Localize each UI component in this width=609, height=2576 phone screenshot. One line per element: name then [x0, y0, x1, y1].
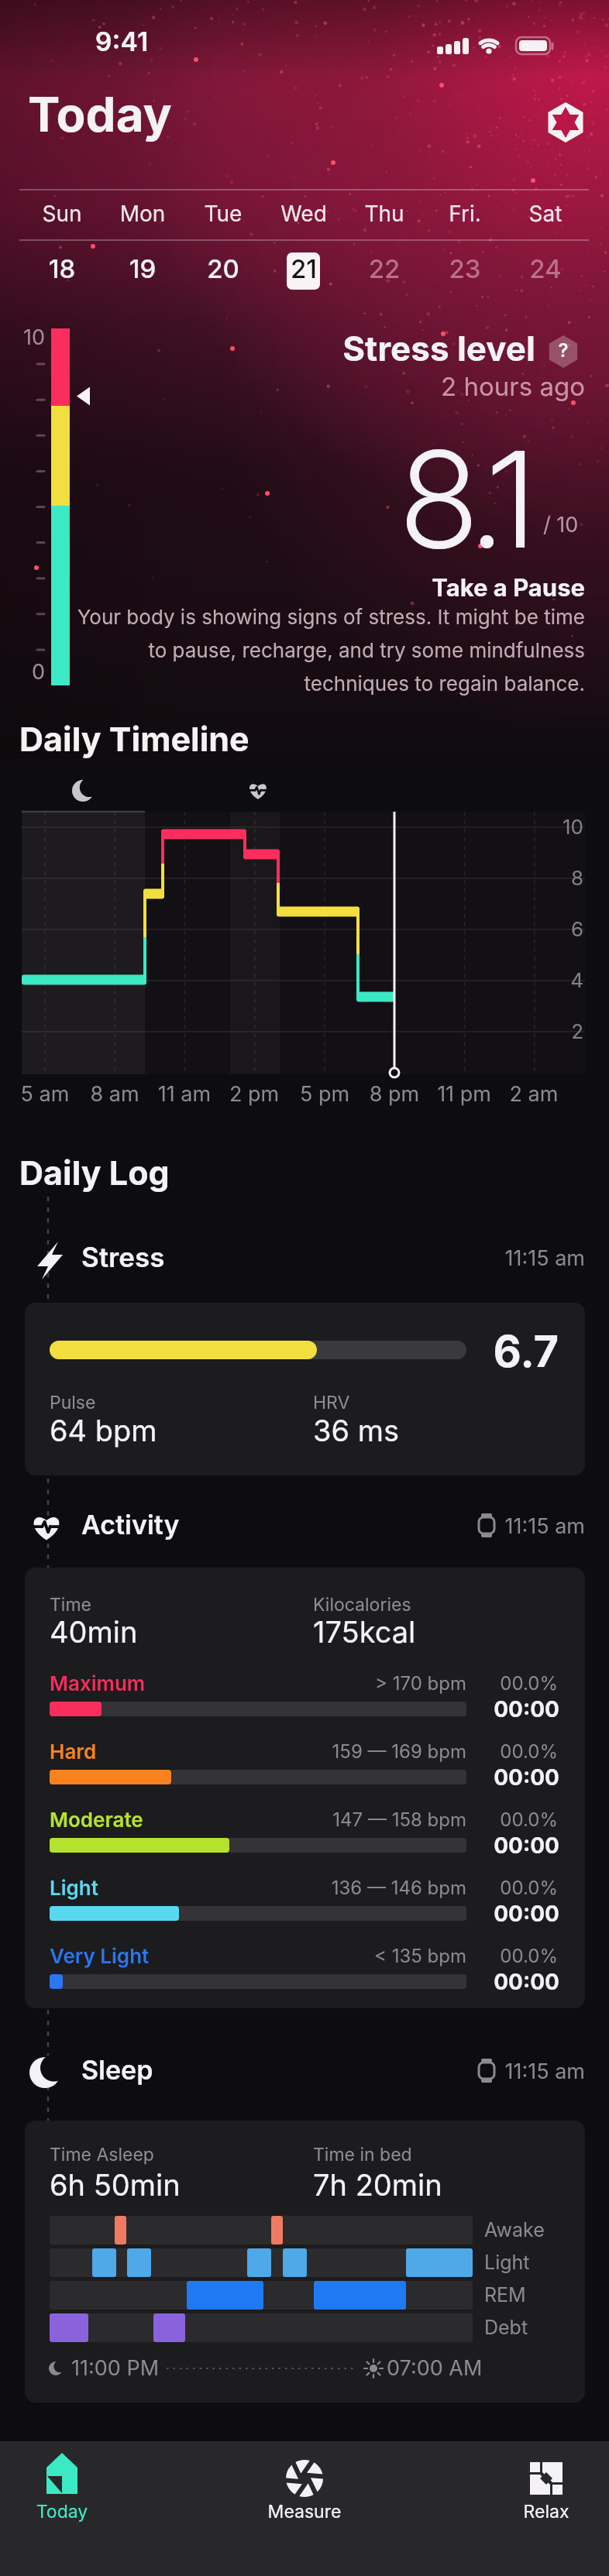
staticText: 11:15 am — [469, 2059, 585, 2084]
staticText: Take a Pause — [353, 573, 585, 603]
staticText: 00:00 — [443, 1764, 559, 1791]
staticText: 147 — 158 bpm — [249, 1808, 466, 1831]
staticText: Awake — [484, 2218, 545, 2241]
staticText: Light — [484, 2251, 530, 2274]
staticText: 11:15 am — [469, 1245, 585, 1271]
staticText: 00.0% — [442, 1808, 558, 1831]
staticText: Thu — [344, 201, 425, 227]
staticText: 07:00 AM — [387, 2355, 483, 2381]
staticText: 5 am — [10, 1081, 80, 1107]
staticText: 0 — [15, 659, 45, 685]
staticText: 23 — [425, 253, 505, 284]
staticText: 6 — [545, 917, 583, 941]
staticText: / 10 — [543, 512, 579, 538]
staticText: 00:00 — [443, 1969, 559, 1995]
button[interactable] — [25, 1568, 585, 2008]
staticText: 2 — [545, 1019, 583, 1043]
staticText: 8 pm — [360, 1081, 429, 1107]
staticText: 22 — [344, 253, 425, 284]
button[interactable] — [505, 197, 586, 294]
staticText: 21 — [263, 253, 344, 284]
staticText: 19 — [102, 253, 183, 284]
button[interactable] — [263, 197, 344, 294]
staticText: Hard — [50, 1740, 97, 1764]
staticText: 18 — [22, 253, 102, 284]
staticText: Today — [15, 2501, 108, 2523]
staticText: 20 — [183, 253, 263, 284]
staticText: 24 — [505, 253, 586, 284]
staticText: 00.0% — [442, 1740, 558, 1763]
staticText: 175kcal — [313, 1614, 416, 1650]
staticText: Relax — [500, 2501, 593, 2523]
staticText: Stress — [81, 1241, 165, 1273]
staticText: Mon — [102, 201, 183, 227]
staticText: 6h 50min — [50, 2167, 181, 2203]
button[interactable] — [183, 197, 263, 294]
button[interactable] — [22, 197, 102, 294]
staticText: 2 am — [499, 1081, 569, 1107]
button[interactable] — [25, 2121, 585, 2403]
staticText: 40min — [50, 1614, 138, 1650]
staticText: 11 am — [150, 1081, 219, 1107]
staticText: Sleep — [81, 2054, 153, 2086]
staticText: 159 — 169 bpm — [249, 1740, 466, 1763]
staticText: Measure — [258, 2501, 351, 2523]
staticText: REM — [484, 2283, 526, 2306]
button[interactable] — [258, 2447, 351, 2525]
staticText: 11:00 PM — [71, 2355, 160, 2381]
staticText: > 170 bpm — [249, 1672, 466, 1695]
staticText: Daily Log — [19, 1152, 170, 1193]
staticText: Sun — [22, 201, 102, 227]
staticText: 00.0% — [442, 1672, 558, 1695]
staticText: 2 pm — [219, 1081, 289, 1107]
staticText: Kilocalories — [313, 1594, 411, 1616]
staticText: 00:00 — [443, 1832, 559, 1859]
staticText: 136 — 146 bpm — [249, 1877, 466, 1899]
staticText: 00.0% — [442, 1945, 558, 1967]
staticText: Tue — [183, 201, 263, 227]
staticText: 00:00 — [443, 1696, 559, 1722]
staticText: Activity — [81, 1509, 180, 1540]
staticText: Your body is showing signs of stress. It… — [50, 605, 585, 696]
staticText: Time Asleep — [50, 2144, 154, 2166]
staticText: Debt — [484, 2316, 528, 2339]
staticText: 8 — [545, 866, 583, 890]
staticText: HRV — [313, 1392, 350, 1413]
button[interactable] — [344, 197, 425, 294]
staticText: 11 pm — [429, 1081, 499, 1107]
staticText: Maximum — [50, 1671, 146, 1695]
staticText: 00:00 — [443, 1901, 559, 1927]
staticText: ? — [548, 339, 579, 362]
staticText: 10 — [15, 325, 45, 350]
staticText: Very Light — [50, 1944, 150, 1968]
staticText: Time in bed — [313, 2144, 412, 2166]
staticText: Sat — [505, 201, 586, 227]
staticText: 36 ms — [313, 1413, 400, 1448]
button[interactable] — [546, 335, 580, 369]
staticText: 6.7 — [442, 1325, 559, 1378]
staticText: Stress level — [275, 328, 535, 369]
staticText: Moderate — [50, 1808, 143, 1832]
button[interactable] — [425, 197, 505, 294]
button[interactable] — [102, 197, 183, 294]
staticText: 5 pm — [290, 1081, 360, 1107]
staticText: 10 — [545, 815, 583, 839]
staticText: 64 bpm — [50, 1413, 157, 1448]
staticText: 7h 20min — [313, 2167, 442, 2203]
staticText: Daily Timeline — [19, 719, 249, 759]
staticText: < 135 bpm — [249, 1945, 466, 1967]
button[interactable] — [25, 1303, 585, 1475]
button[interactable] — [545, 101, 587, 143]
staticText: 4 — [545, 968, 583, 992]
staticText: 2 hours ago — [353, 371, 585, 402]
staticText: Fri. — [425, 201, 505, 227]
staticText: Today — [28, 85, 172, 143]
staticText: Wed — [263, 201, 344, 227]
staticText: 8 am — [80, 1081, 150, 1107]
button[interactable] — [500, 2447, 593, 2525]
staticText: 9:41 — [75, 26, 168, 57]
staticText: Time — [50, 1594, 91, 1616]
button[interactable] — [15, 2447, 108, 2525]
staticText: 00.0% — [442, 1877, 558, 1899]
staticText: Pulse — [50, 1392, 96, 1413]
